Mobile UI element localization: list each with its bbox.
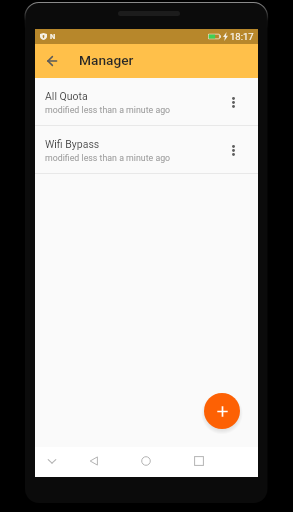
staticText: All Quota — [45, 90, 88, 102]
button[interactable]: Back — [83, 450, 105, 472]
staticText: Manager — [79, 52, 134, 68]
button[interactable]: Home — [135, 450, 157, 472]
button[interactable]: Add — [204, 393, 240, 429]
staticText: Wifi Bypass — [45, 138, 100, 150]
button[interactable]: All Quota — [35, 78, 258, 126]
button[interactable]: Recents — [188, 450, 210, 472]
button[interactable]: Hide keyboard — [41, 450, 63, 472]
staticText: N — [50, 32, 56, 41]
button[interactable]: Navigate up — [39, 48, 65, 74]
staticText: modified less than a minute ago — [45, 153, 171, 163]
button[interactable]: More options — [222, 91, 244, 113]
button[interactable]: Wifi Bypass — [35, 126, 258, 174]
button[interactable]: More options — [222, 139, 244, 161]
staticText: modified less than a minute ago — [45, 105, 171, 115]
staticText: 18:17 — [230, 31, 254, 42]
